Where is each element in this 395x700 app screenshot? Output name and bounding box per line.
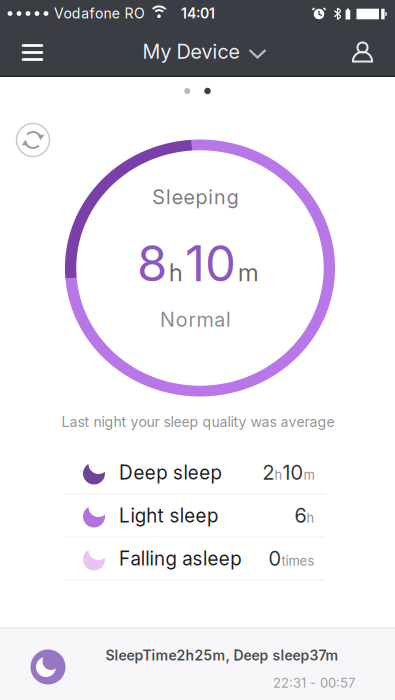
staticText: SleepTime2h25m, Deep sleep37m xyxy=(105,647,338,664)
staticText: 0 xyxy=(268,547,281,570)
staticText: 14:01 xyxy=(181,5,215,22)
staticText: 22:31 - 00:57 xyxy=(273,675,355,691)
staticText: h xyxy=(306,510,314,526)
staticText: Last night your sleep quality was averag… xyxy=(61,414,334,430)
button[interactable]: Refresh xyxy=(15,122,51,158)
staticText: m xyxy=(238,258,259,287)
staticText: 2 xyxy=(262,461,274,484)
staticText: h xyxy=(169,258,183,287)
staticText: Vodafone RO xyxy=(54,5,145,22)
staticText: h xyxy=(274,467,282,483)
button[interactable]: Menu xyxy=(10,30,54,74)
staticText: times xyxy=(281,553,314,569)
staticText: 8 xyxy=(137,235,167,292)
staticText: 6 xyxy=(294,504,306,527)
staticText: Normal xyxy=(160,308,231,331)
staticText: Sleeping xyxy=(152,185,239,209)
staticText: Light sleep xyxy=(119,504,218,527)
button[interactable]: SleepTime2h25m, Deep sleep37m xyxy=(0,627,395,700)
staticText: 10 xyxy=(185,235,236,292)
staticText: Falling asleep xyxy=(119,547,241,570)
staticText: Deep sleep xyxy=(119,461,222,484)
staticText: My Device xyxy=(142,40,239,63)
button[interactable]: Profile xyxy=(340,38,384,82)
staticText: 10 xyxy=(282,461,303,484)
button[interactable]: My Device xyxy=(142,40,265,63)
staticText: m xyxy=(303,467,314,483)
